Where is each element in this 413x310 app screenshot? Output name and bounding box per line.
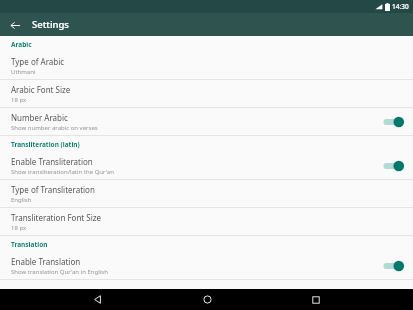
button[interactable]: Recent apps: [304, 289, 328, 310]
button[interactable]: Home: [195, 289, 219, 310]
staticText: Transliteration Font Size: [11, 212, 102, 223]
staticText: Number Arabic: [11, 112, 68, 123]
button[interactable]: Arabic Font Size: [0, 80, 413, 107]
button[interactable]: Type of Transliteration: [0, 180, 413, 207]
button[interactable]: Enable Translation: [0, 252, 413, 279]
button[interactable]: Toggle: [381, 159, 405, 173]
staticText: Arabic Font Size: [11, 84, 71, 95]
staticText: Settings: [32, 18, 69, 31]
staticText: Type of Arabic: [11, 56, 65, 67]
button[interactable]: Toggle: [381, 259, 405, 273]
staticText: 18 px: [11, 224, 27, 232]
button[interactable]: Back: [6, 16, 24, 34]
staticText: English: [11, 196, 32, 204]
staticText: Transliteration (latin): [11, 140, 80, 149]
staticText: Type of Transliteration: [11, 184, 95, 195]
staticText: Arabic: [11, 40, 32, 49]
staticText: Translation: [11, 240, 48, 249]
button[interactable]: Enable Transliteration: [0, 152, 413, 179]
staticText: Enable Transliteration: [11, 156, 93, 167]
staticText: Show transliteration/latin the Qur'an: [11, 168, 114, 176]
staticText: Show number arabic on verses: [11, 124, 98, 132]
button[interactable]: Number Arabic: [0, 108, 413, 135]
staticText: 18 px: [11, 96, 27, 104]
button[interactable]: Toggle: [381, 115, 405, 129]
button[interactable]: Back: [85, 289, 109, 310]
button[interactable]: Transliteration Font Size: [0, 208, 413, 235]
button[interactable]: Type of Arabic: [0, 52, 413, 79]
staticText: Enable Translation: [11, 256, 81, 267]
staticText: Uthmani: [11, 68, 36, 76]
staticText: 14:30: [392, 2, 409, 11]
staticText: Show translation Qur'an in English: [11, 268, 108, 276]
